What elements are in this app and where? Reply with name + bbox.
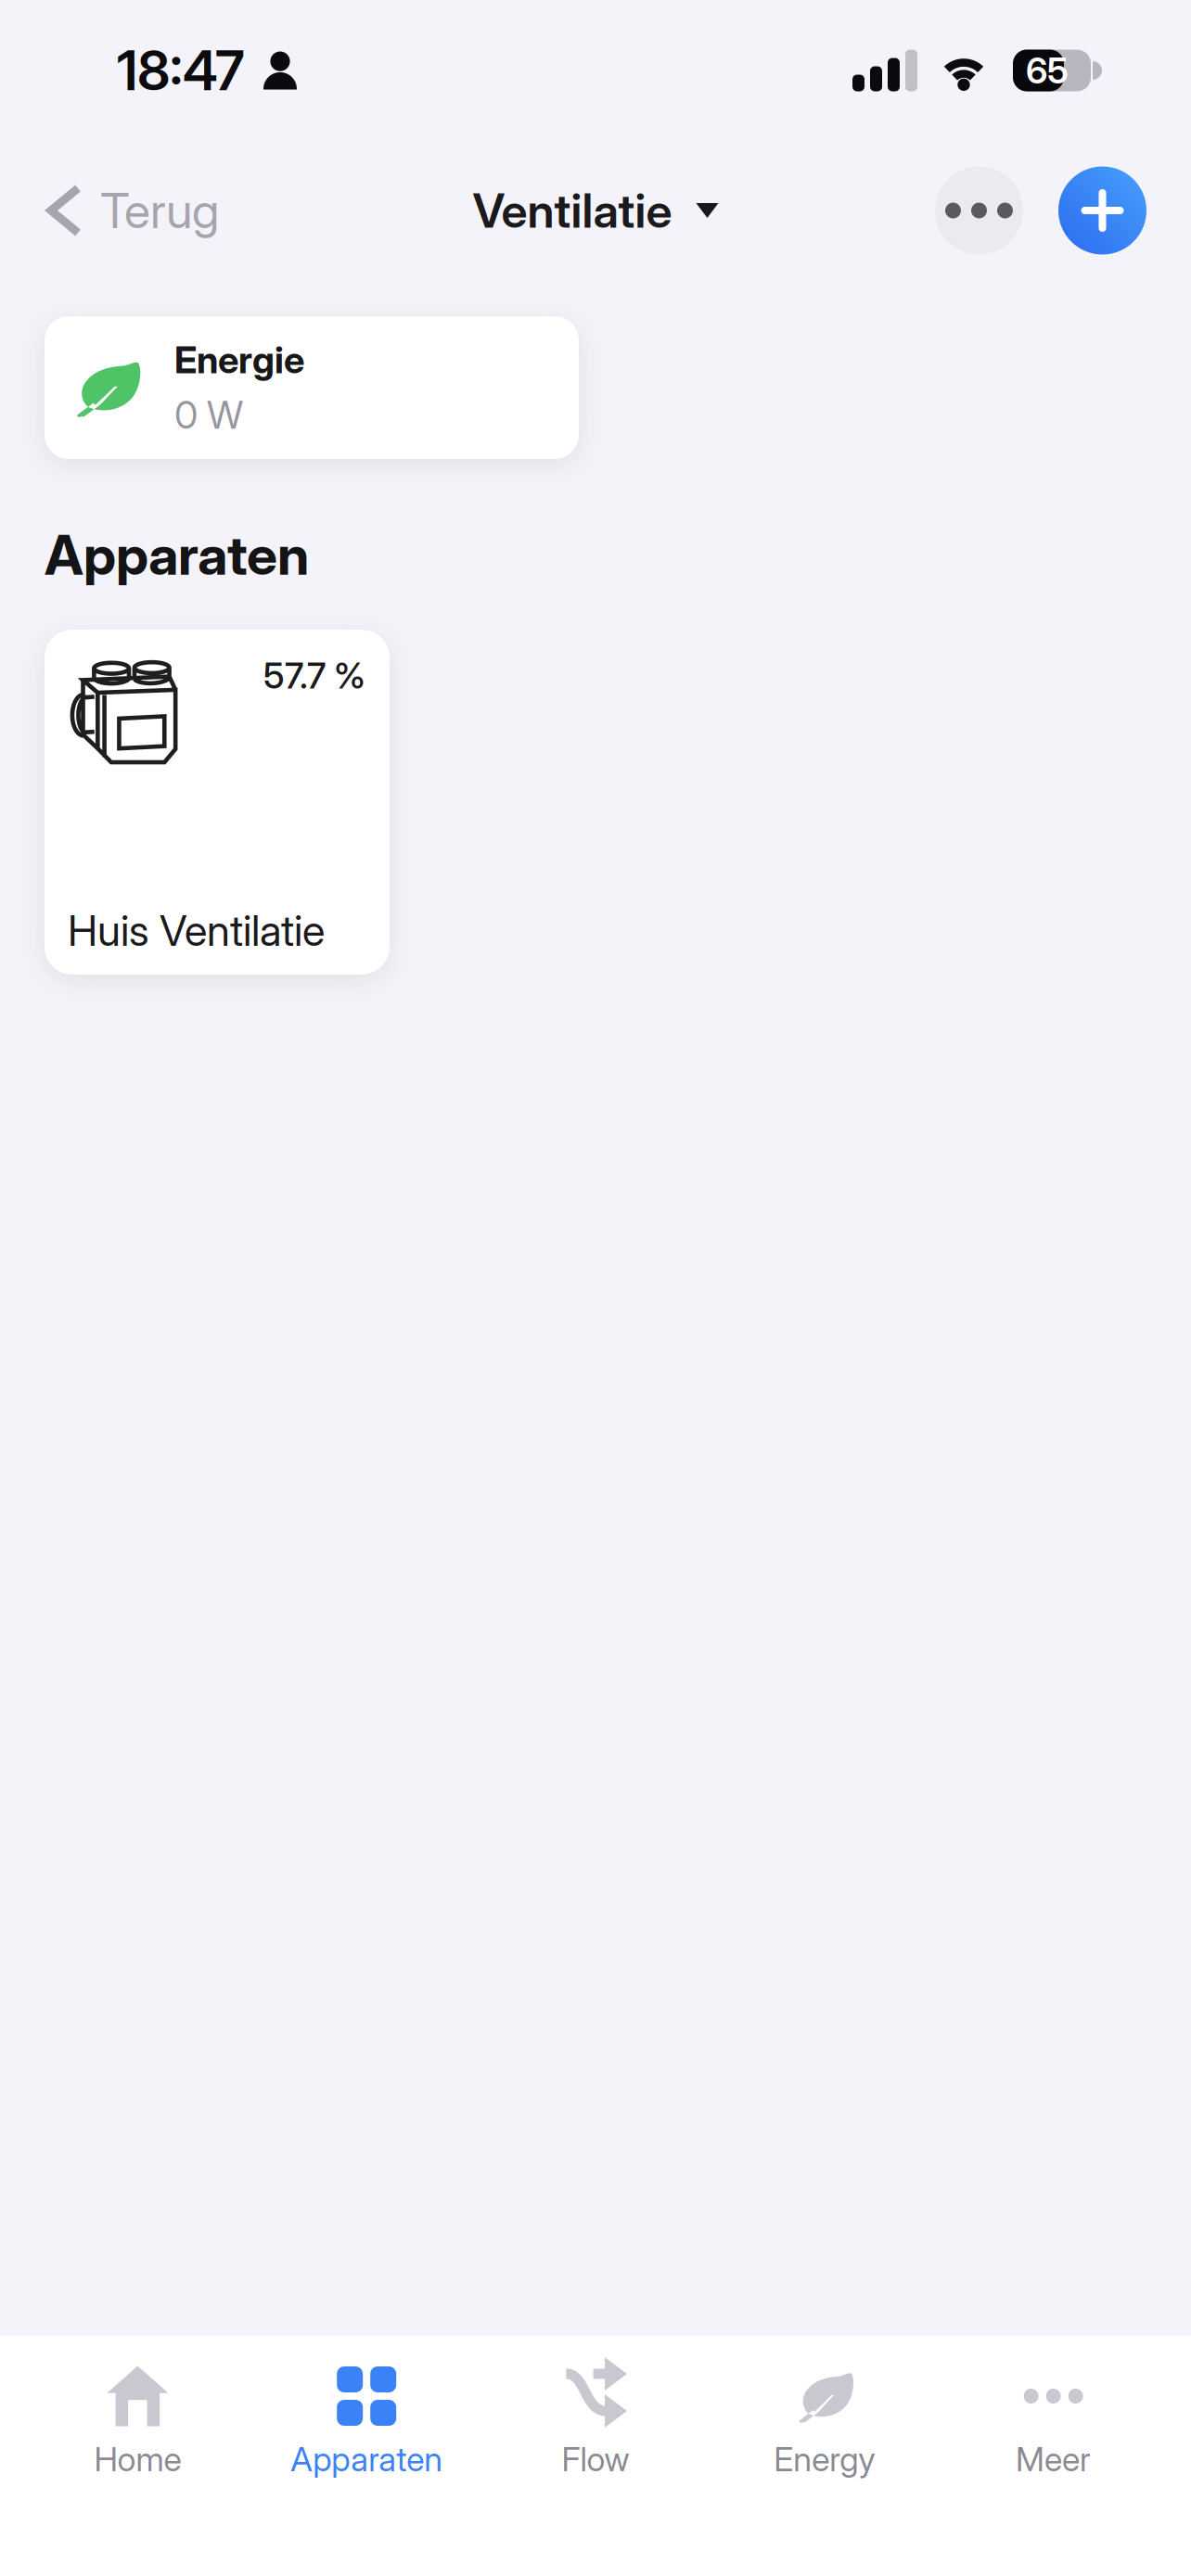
staticText: 65 xyxy=(1026,49,1069,92)
staticText: Huis Ventilatie xyxy=(68,905,325,956)
staticText: 57.7 % xyxy=(263,654,365,697)
staticText: Energy xyxy=(774,2439,875,2479)
button[interactable]: Apparaten xyxy=(252,2336,481,2479)
staticText: Meer xyxy=(1016,2439,1091,2479)
staticText: 18:47 xyxy=(117,38,245,103)
button[interactable]: 57.7 % xyxy=(45,630,390,975)
staticText: Flow xyxy=(562,2439,629,2479)
staticText: Home xyxy=(94,2439,181,2479)
button[interactable]: Home xyxy=(23,2336,252,2479)
button[interactable]: Add device xyxy=(1058,166,1146,255)
staticText: 0 W xyxy=(174,392,243,438)
staticText: Apparaten xyxy=(45,522,309,588)
button[interactable]: Energie xyxy=(45,316,579,459)
button[interactable]: Ventilatie xyxy=(450,141,741,280)
button[interactable]: Flow xyxy=(481,2336,710,2479)
staticText: Energie xyxy=(174,337,304,382)
button[interactable]: Energy xyxy=(710,2336,939,2479)
button[interactable]: Terug xyxy=(0,141,245,280)
button[interactable]: Meer xyxy=(939,2336,1168,2479)
staticText: Apparaten xyxy=(291,2439,443,2479)
staticText: Ventilatie xyxy=(473,182,672,239)
staticText: Terug xyxy=(100,181,219,240)
button[interactable]: More options xyxy=(935,166,1023,255)
